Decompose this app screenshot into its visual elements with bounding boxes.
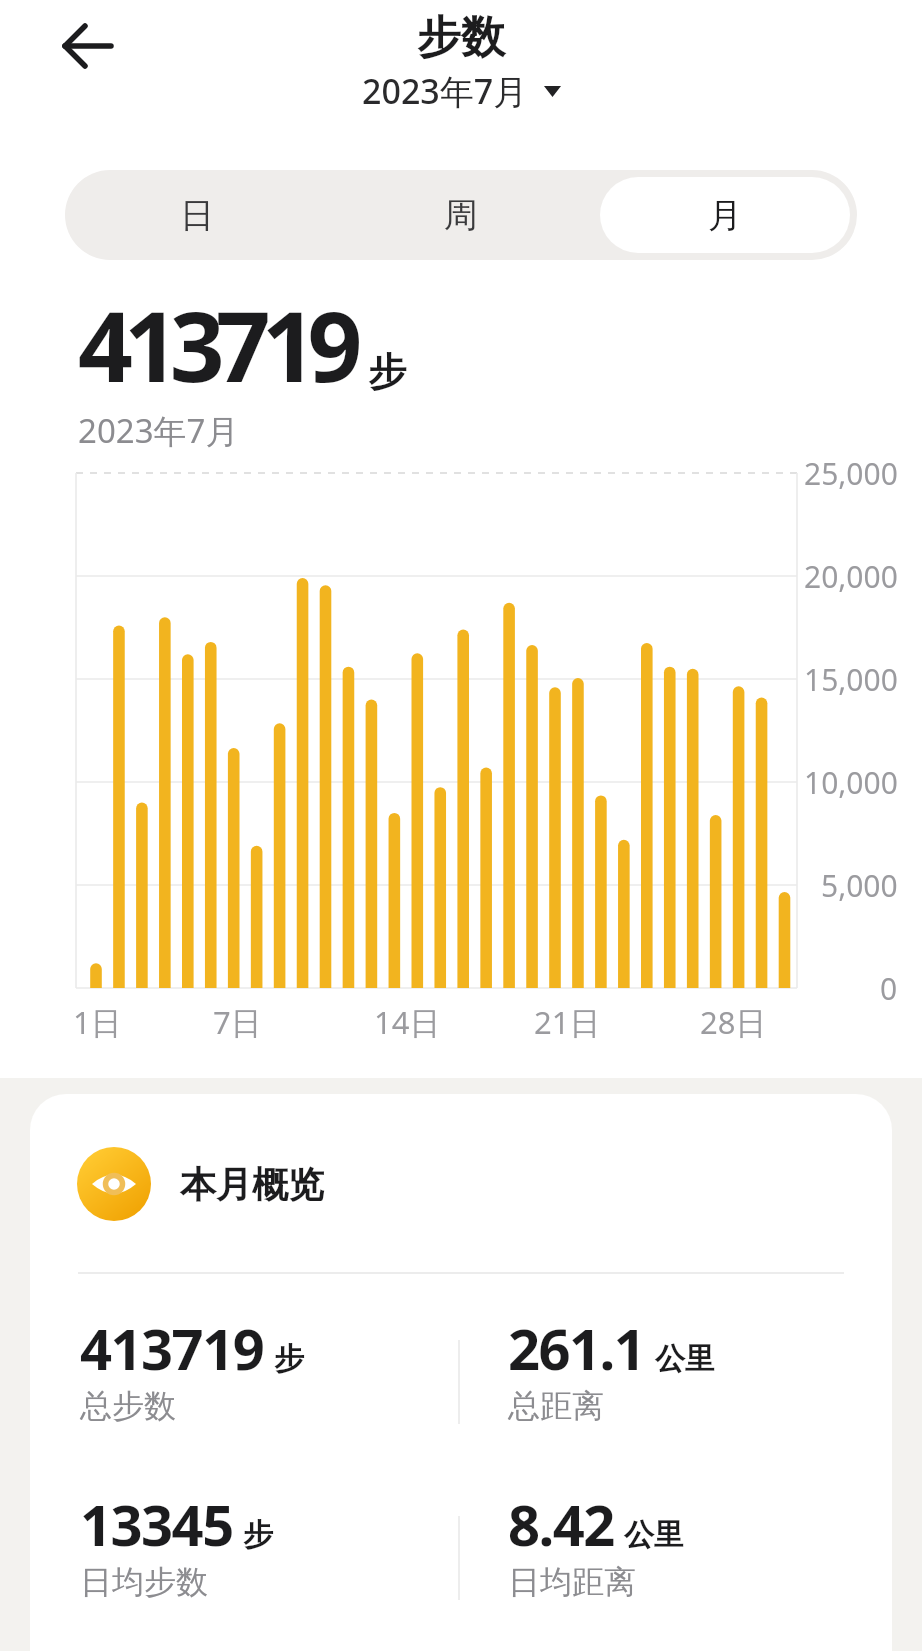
staticText: 7日 (213, 1001, 262, 1043)
staticText: 1日 (73, 1001, 122, 1043)
staticText: 21日 (534, 1001, 601, 1043)
staticText: 日 (180, 194, 214, 237)
button[interactable]: 日 (65, 170, 329, 260)
button[interactable]: 周 (329, 170, 593, 260)
staticText: 25,000 (804, 453, 898, 494)
staticText: 公里 (624, 1516, 684, 1554)
staticText: 步 (368, 348, 406, 396)
button[interactable]: 月 (593, 170, 857, 260)
staticText: 步 (274, 1340, 304, 1378)
staticText: 公里 (655, 1340, 715, 1378)
staticText: 28日 (700, 1001, 767, 1043)
staticText: 413719 (78, 279, 354, 410)
staticText: 8.42 (508, 1486, 614, 1562)
staticText: 2023年7月 (362, 68, 528, 114)
button[interactable]: 2023年7月 (362, 68, 561, 114)
staticText: 13345 (80, 1486, 233, 1562)
staticText: 2023年7月 (78, 408, 239, 453)
staticText: 本月概览 (180, 1162, 324, 1207)
staticText: 10,000 (804, 762, 898, 803)
staticText: 0 (880, 968, 898, 1009)
staticText: 413719 (80, 1310, 264, 1386)
staticText: 日均距离 (508, 1562, 636, 1602)
staticText: 5,000 (821, 865, 898, 906)
staticText: 总步数 (80, 1386, 176, 1426)
staticText: 步数 (417, 10, 505, 65)
staticText: 日均步数 (80, 1562, 208, 1602)
staticText: 15,000 (804, 659, 898, 700)
staticText: 20,000 (804, 556, 898, 597)
button[interactable] (48, 14, 128, 78)
staticText: 步 (243, 1516, 273, 1554)
staticText: 总距离 (508, 1386, 604, 1426)
staticText: 261.1 (508, 1310, 645, 1386)
staticText: 周 (444, 194, 478, 237)
staticText: 月 (708, 194, 742, 237)
staticText: 14日 (374, 1001, 441, 1043)
